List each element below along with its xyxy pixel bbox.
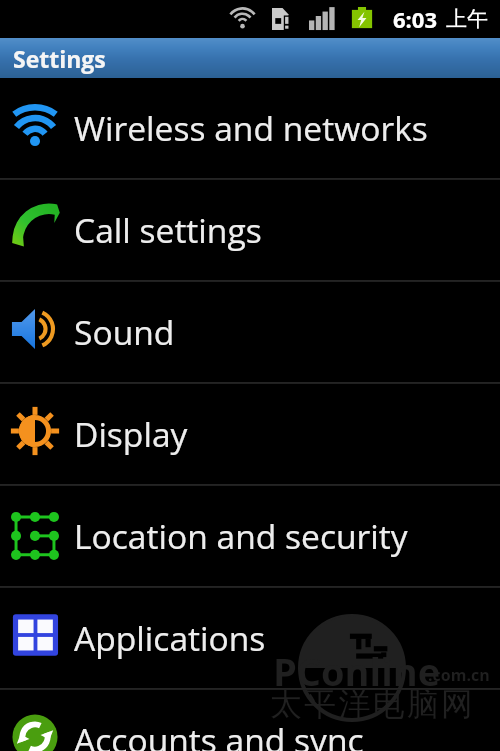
other: Mobile signal strength	[309, 7, 335, 31]
staticText: Display	[74, 411, 188, 457]
staticText: Call settings	[74, 207, 262, 253]
button[interactable]: Sound	[0, 282, 500, 382]
staticText: 太平洋电脑网	[270, 684, 476, 724]
staticText: .com.cn	[428, 664, 490, 686]
button[interactable]: Accounts and sync	[0, 690, 500, 751]
other: SD card problem	[272, 7, 293, 31]
button[interactable]: Call settings	[0, 180, 500, 280]
button[interactable]: Location and security	[0, 486, 500, 586]
button[interactable]: Wireless and networks	[0, 78, 500, 178]
staticText: Wireless and networks	[74, 105, 428, 151]
staticText: Location and security	[74, 513, 408, 559]
staticText: Applications	[74, 615, 266, 661]
other: Wi-Fi connected	[227, 7, 258, 31]
staticText: Sound	[74, 309, 175, 355]
button[interactable]: Display	[0, 384, 500, 484]
staticText: Accounts and sync	[74, 717, 364, 751]
staticText: 上午	[446, 6, 488, 32]
button[interactable]: Applications	[0, 588, 500, 688]
staticText: PConline	[273, 645, 441, 697]
staticText: 6:03	[393, 4, 438, 34]
staticText: Settings	[13, 43, 106, 74]
other: Battery charging	[351, 7, 373, 31]
